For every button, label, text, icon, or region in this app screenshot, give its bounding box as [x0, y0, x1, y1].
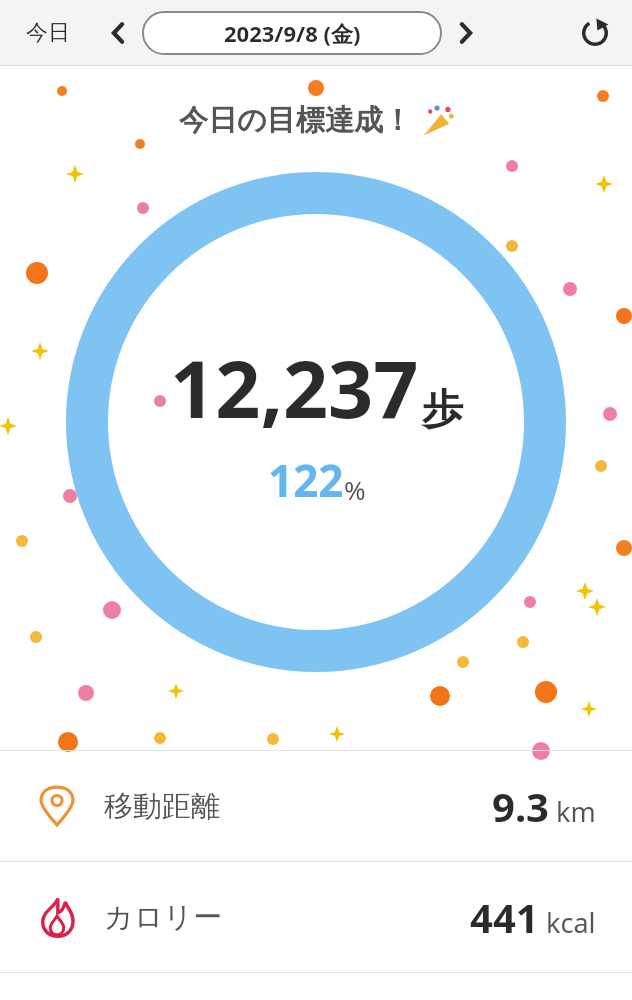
button[interactable]: Next day	[446, 13, 486, 53]
button[interactable]: 今日	[14, 13, 82, 53]
button[interactable]: Refresh	[572, 10, 618, 56]
staticText: 122	[268, 450, 344, 510]
staticText: カロリー	[104, 899, 223, 936]
staticText: 今日の目標達成！	[179, 102, 412, 139]
staticText: 歩	[422, 384, 463, 436]
staticText: 9.3	[492, 779, 549, 833]
staticText: kcal	[546, 904, 596, 941]
button[interactable]: 2023/9/8 (金)	[142, 11, 442, 55]
button[interactable]: 移動距離	[0, 751, 632, 861]
staticText: %	[344, 472, 366, 507]
button[interactable]: Previous day	[98, 13, 138, 53]
staticText: 移動距離	[104, 788, 220, 825]
staticText: 今日	[26, 19, 70, 47]
staticText: 12,237	[170, 334, 419, 442]
staticText: 2023/9/8 (金)	[224, 18, 361, 48]
staticText: km	[556, 793, 596, 830]
staticText: 441	[470, 890, 539, 944]
button[interactable]: カロリー	[0, 862, 632, 972]
